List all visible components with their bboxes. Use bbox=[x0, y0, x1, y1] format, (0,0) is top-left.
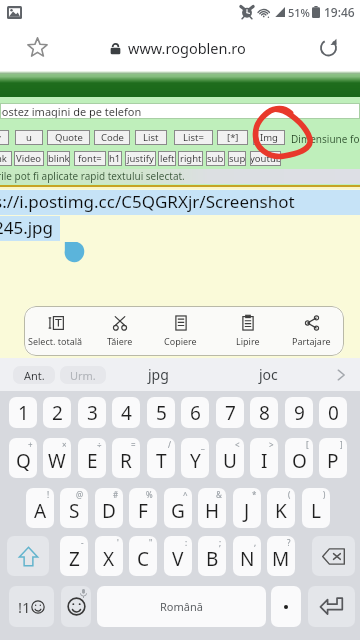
button[interactable]: N bbox=[233, 536, 261, 576]
button[interactable]: F bbox=[129, 488, 157, 528]
button[interactable]: Z bbox=[60, 536, 88, 576]
staticText: * bbox=[252, 489, 257, 500]
button[interactable]: Q bbox=[9, 438, 37, 478]
button[interactable]: Quote bbox=[47, 130, 90, 145]
button[interactable]: H bbox=[198, 488, 226, 528]
button[interactable] bbox=[271, 586, 301, 627]
button[interactable]: Bookmark bbox=[27, 37, 48, 58]
button[interactable]: Shift bbox=[7, 536, 49, 576]
staticText: + bbox=[28, 439, 33, 450]
staticText: Urm. bbox=[70, 368, 96, 383]
button[interactable]: font= bbox=[74, 151, 106, 166]
button[interactable]: L bbox=[302, 488, 330, 528]
staticText: 245.jpg bbox=[0, 216, 54, 239]
staticText: jpg bbox=[148, 365, 169, 384]
button[interactable]: Emoji bbox=[61, 586, 91, 627]
button[interactable]: C bbox=[129, 536, 157, 576]
button[interactable]: List bbox=[135, 130, 167, 145]
button[interactable]: E bbox=[78, 438, 106, 478]
button[interactable]: X bbox=[95, 536, 123, 576]
button[interactable]: 5 bbox=[147, 397, 175, 428]
button[interactable]: R bbox=[112, 438, 140, 478]
button[interactable]: B bbox=[198, 536, 226, 576]
staticText: 2 bbox=[52, 400, 63, 426]
button[interactable]: Enter bbox=[308, 586, 355, 627]
staticText: 3 bbox=[87, 400, 98, 426]
button[interactable]: Copiere bbox=[148, 306, 212, 356]
button[interactable]: Y bbox=[181, 438, 209, 478]
button[interactable]: 6 bbox=[181, 397, 209, 428]
button[interactable]: 4 bbox=[112, 397, 140, 428]
button[interactable]: joc bbox=[240, 358, 296, 391]
staticText: ; bbox=[219, 537, 222, 548]
button[interactable]: W bbox=[43, 438, 71, 478]
button[interactable]: 7 bbox=[216, 397, 244, 428]
staticText: 6 bbox=[190, 400, 201, 426]
button[interactable]: 1 bbox=[9, 397, 37, 428]
button[interactable]: Partajare bbox=[279, 306, 343, 356]
staticText: postez imagini de pe telefon bbox=[0, 104, 142, 119]
button[interactable]: I bbox=[250, 438, 278, 478]
button[interactable]: O bbox=[285, 438, 313, 478]
button[interactable]: blink bbox=[47, 151, 70, 166]
button[interactable]: T bbox=[147, 438, 175, 478]
staticText: s://i.postimg.cc/C5QGRXjr/Screenshot bbox=[0, 190, 295, 213]
button[interactable]: youtube bbox=[250, 151, 281, 166]
button[interactable]: 3 bbox=[78, 397, 106, 428]
button[interactable]: V bbox=[164, 536, 192, 576]
button[interactable]: justify bbox=[125, 151, 156, 166]
button[interactable]: Lipire bbox=[216, 306, 280, 356]
button[interactable]: Tăiere bbox=[88, 306, 152, 356]
staticText: ' bbox=[117, 537, 119, 548]
button[interactable]: Backspace bbox=[312, 536, 355, 576]
button[interactable]: 0 bbox=[319, 397, 347, 428]
button[interactable]: Reload bbox=[318, 37, 339, 58]
button[interactable]: Ant. bbox=[13, 366, 55, 384]
button[interactable]: A bbox=[26, 488, 54, 528]
button[interactable]: List= bbox=[174, 130, 213, 145]
button[interactable]: y bbox=[0, 130, 9, 145]
staticText: font= bbox=[78, 152, 102, 165]
button[interactable]: More suggestions bbox=[328, 362, 354, 388]
button[interactable]: Urm. bbox=[60, 366, 106, 384]
button[interactable]: 9 bbox=[285, 397, 313, 428]
button[interactable]: G bbox=[164, 488, 192, 528]
staticText: justify bbox=[127, 152, 154, 165]
button[interactable]: Română bbox=[97, 586, 266, 627]
button[interactable]: [*] bbox=[217, 130, 248, 145]
button[interactable]: M bbox=[267, 536, 295, 576]
staticText: ? bbox=[287, 537, 291, 548]
staticText: Q bbox=[16, 448, 31, 474]
button[interactable]: K bbox=[267, 488, 295, 528]
button[interactable]: U bbox=[216, 438, 244, 478]
staticText: 19:46 bbox=[324, 4, 355, 20]
button[interactable]: J bbox=[233, 488, 261, 528]
button[interactable]: 2 bbox=[43, 397, 71, 428]
staticText: Română bbox=[160, 599, 203, 614]
button[interactable]: Img bbox=[253, 130, 285, 145]
button[interactable]: Video bbox=[14, 151, 44, 166]
button[interactable]: Symbols bbox=[9, 586, 54, 627]
button[interactable]: D bbox=[95, 488, 123, 528]
button[interactable]: left bbox=[158, 151, 176, 166]
button[interactable]: u bbox=[15, 130, 43, 145]
button[interactable]: right bbox=[178, 151, 203, 166]
button[interactable]: 8 bbox=[250, 397, 278, 428]
button[interactable]: link bbox=[0, 151, 12, 166]
button[interactable]: postez imagini de pe telefon bbox=[0, 103, 360, 119]
button[interactable]: S bbox=[60, 488, 88, 528]
button[interactable]: Select. totală bbox=[24, 306, 87, 356]
button[interactable]: P bbox=[319, 438, 347, 478]
staticText: ! bbox=[47, 489, 50, 500]
button[interactable]: jpg bbox=[130, 358, 186, 391]
staticText: 9 bbox=[294, 400, 305, 426]
staticText: Copiere bbox=[164, 335, 197, 347]
button[interactable]: Code bbox=[94, 130, 130, 145]
button[interactable]: h1 bbox=[108, 151, 122, 166]
button[interactable]: sup bbox=[228, 151, 246, 166]
button[interactable]: sub bbox=[206, 151, 225, 166]
staticText: S bbox=[69, 498, 80, 524]
staticText: Code bbox=[101, 131, 124, 144]
staticText: T bbox=[156, 448, 167, 474]
staticText: R bbox=[120, 448, 132, 474]
